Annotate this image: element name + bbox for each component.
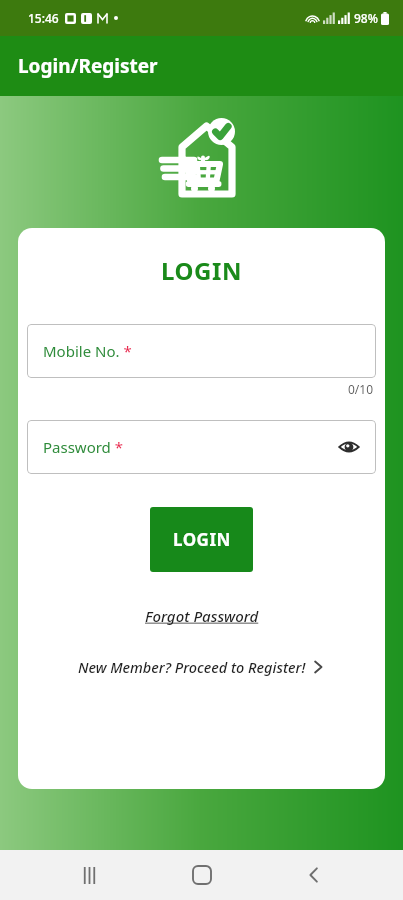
button[interactable]: Mobile No. *	[27, 324, 376, 378]
button[interactable]: Back	[290, 851, 338, 899]
staticText: Forgot Password	[145, 606, 259, 626]
button[interactable]: Forgot Password	[137, 602, 267, 630]
staticText: Login/Register	[18, 53, 158, 79]
staticText: Mobile No. *	[43, 341, 132, 361]
other: App logo	[152, 114, 252, 214]
staticText: LOGIN	[161, 254, 243, 287]
button[interactable]: Home	[178, 851, 226, 899]
staticText: 98%	[354, 10, 378, 26]
staticText: New Member? Proceed to Register!	[78, 657, 306, 677]
button[interactable]: New Member? Proceed to Register!	[72, 653, 332, 681]
staticText: 15:46	[28, 10, 59, 26]
button[interactable]: Recent apps	[65, 851, 113, 899]
staticText: LOGIN	[173, 528, 231, 551]
button[interactable]: LOGIN	[150, 507, 253, 572]
staticText: 0/10	[348, 381, 374, 397]
staticText: Password *	[43, 437, 124, 457]
button[interactable]: Password *	[27, 420, 376, 474]
button[interactable]: Show password	[336, 434, 362, 460]
